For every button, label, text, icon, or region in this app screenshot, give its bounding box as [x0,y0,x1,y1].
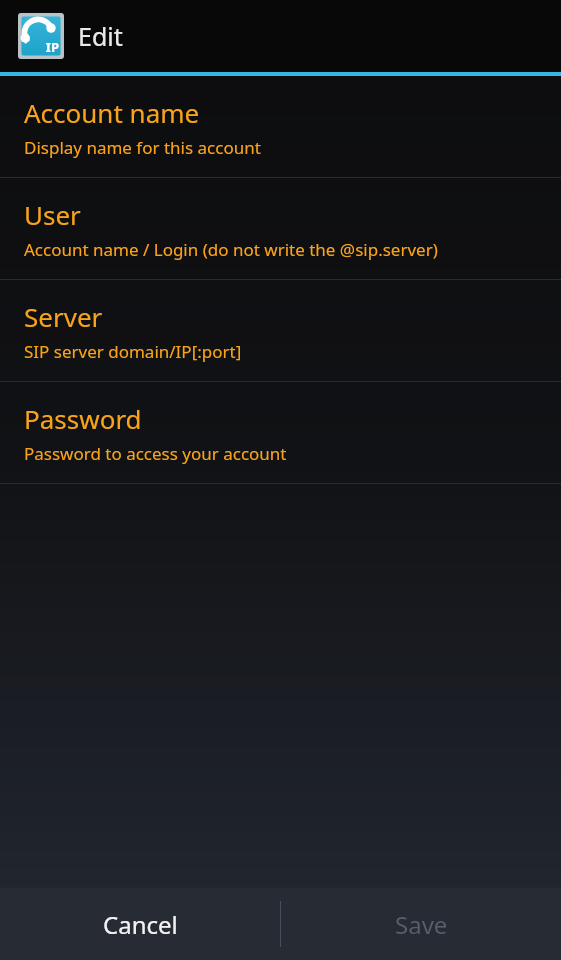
staticText: Account name [24,95,200,130]
button[interactable]: Server [0,280,561,381]
staticText: Password to access your account [24,442,287,465]
button[interactable]: App icon [18,13,64,59]
staticText: Cancel [103,908,178,941]
staticText: Edit [78,19,123,53]
staticText: User [24,197,81,232]
button[interactable]: Account name [0,76,561,177]
button[interactable]: Save [281,888,561,960]
staticText: Server [24,299,103,334]
staticText: Display name for this account [24,136,261,159]
staticText: Password [24,401,142,436]
button[interactable]: Password [0,382,561,483]
staticText: IP [45,38,59,56]
staticText: SIP server domain/IP[:port] [24,340,242,363]
staticText: Save [395,908,448,941]
button[interactable]: User [0,178,561,279]
button[interactable]: Cancel [0,888,280,960]
staticText: Account name / Login (do not write the @… [24,238,438,261]
